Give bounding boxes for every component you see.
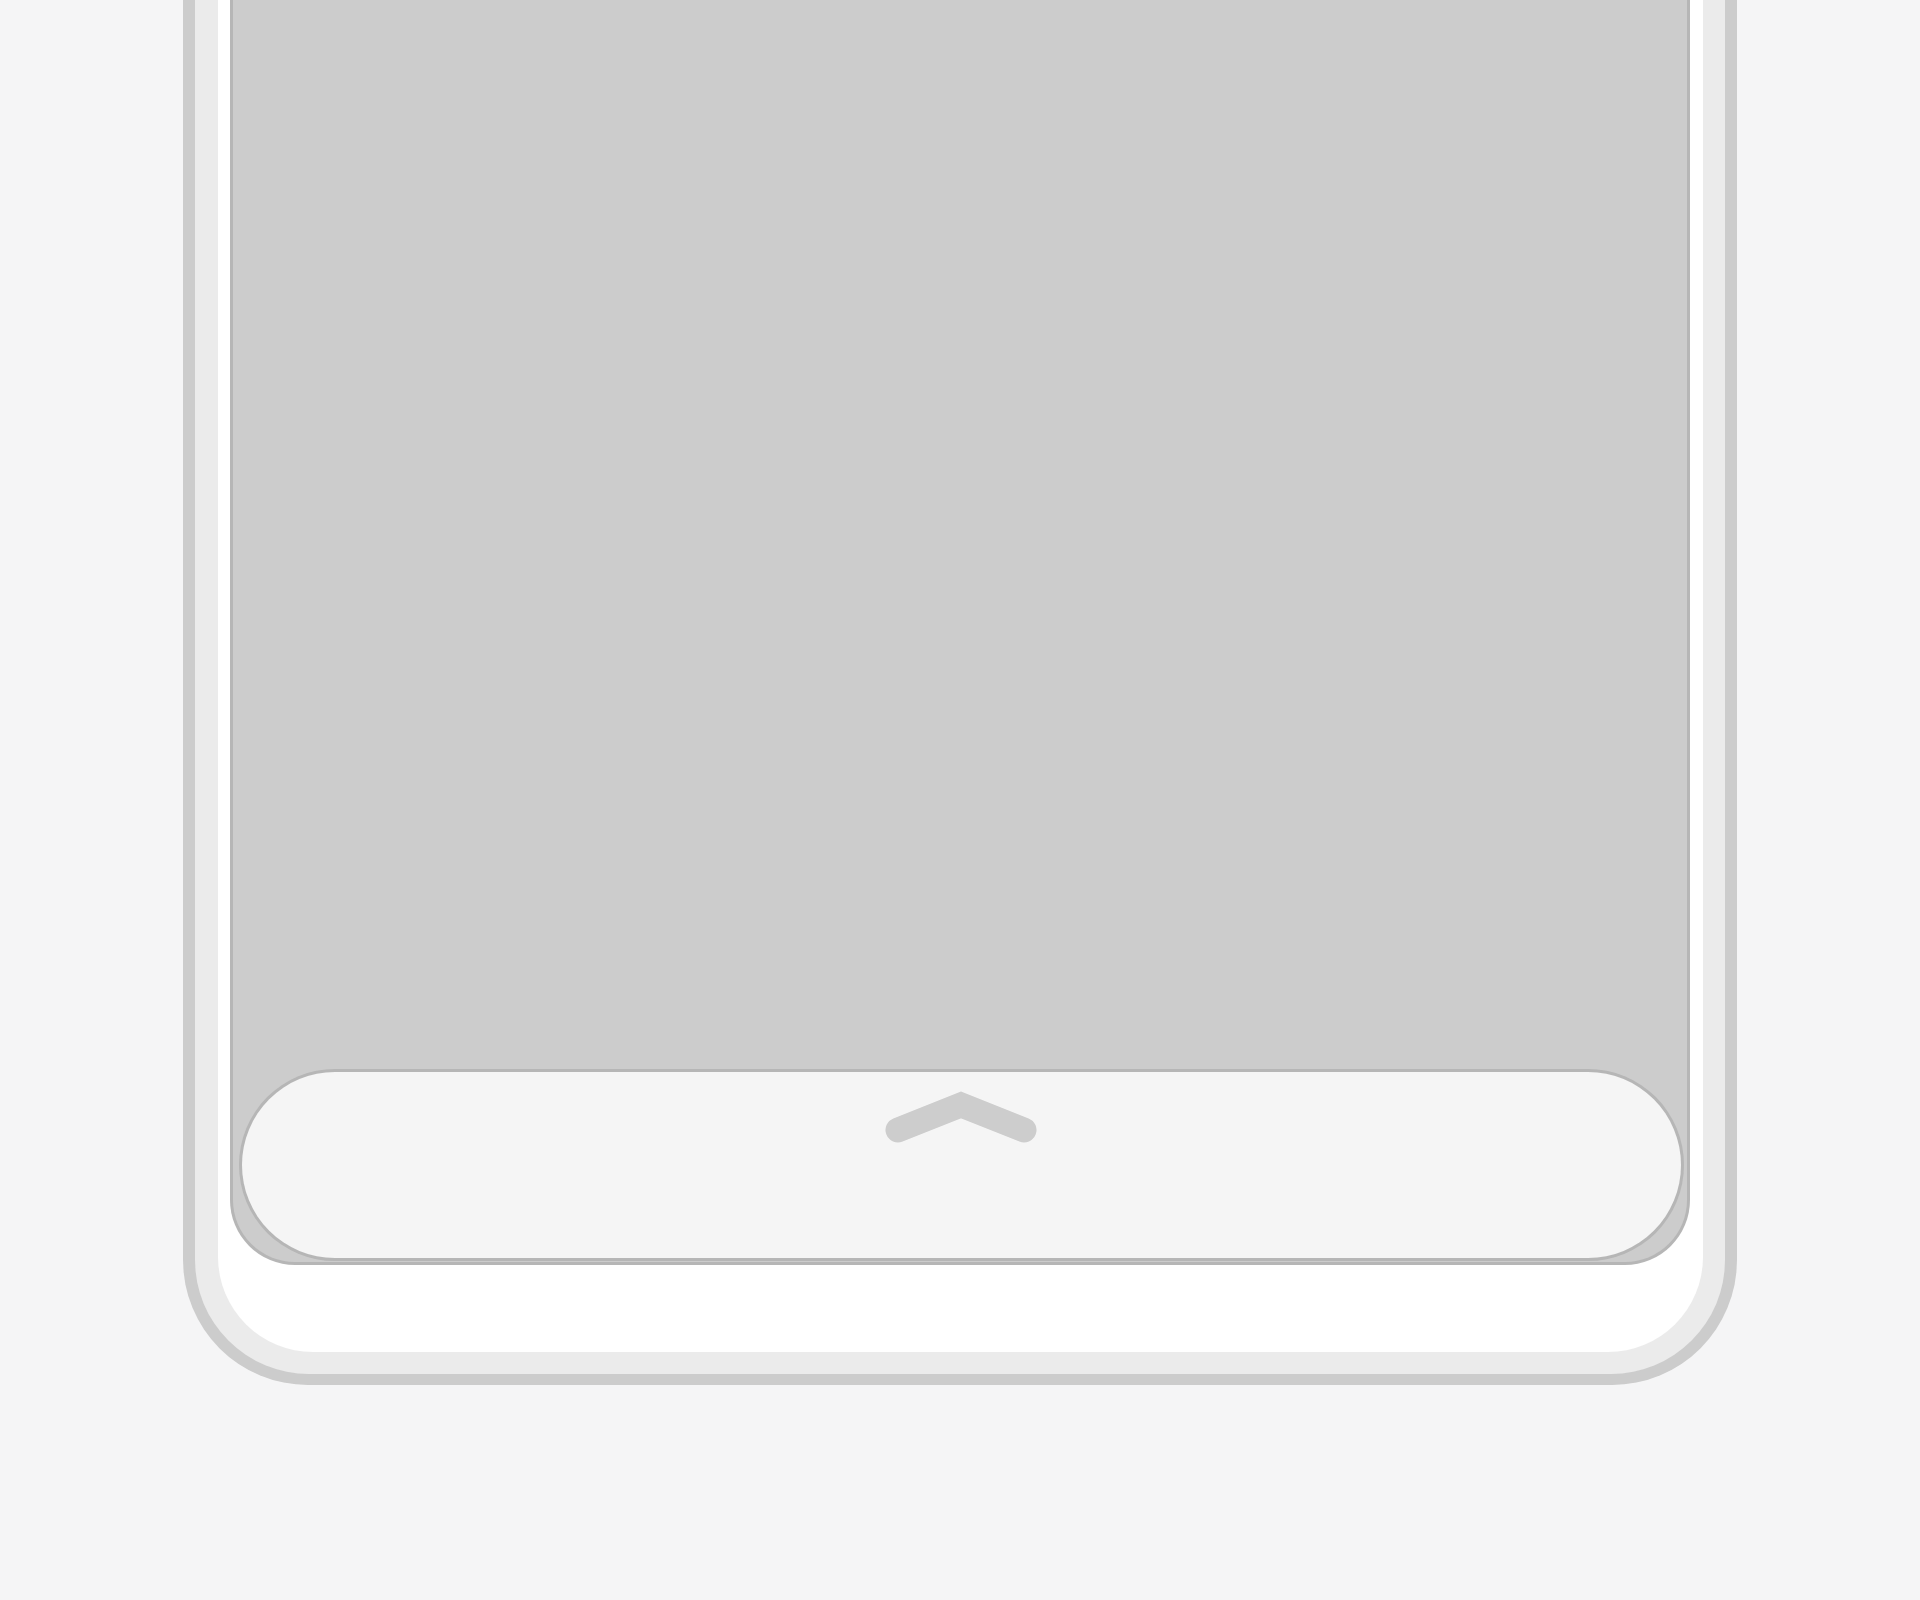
button[interactable]: Expand bbox=[242, 1072, 1681, 1258]
